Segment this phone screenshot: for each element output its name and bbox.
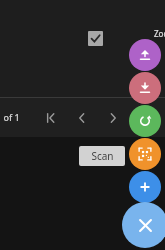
button[interactable]: First page xyxy=(38,105,64,131)
button[interactable]: Download xyxy=(129,72,161,104)
button[interactable]: Next page xyxy=(100,105,126,131)
button[interactable]: Upload xyxy=(129,39,161,71)
button[interactable]: Select all xyxy=(88,31,103,46)
button[interactable]: Refresh xyxy=(129,105,161,137)
button[interactable]: Close menu xyxy=(122,202,165,248)
button[interactable]: Add xyxy=(129,171,161,203)
button[interactable]: Scan xyxy=(79,146,125,166)
staticText: 1 of 1 xyxy=(0,111,20,123)
button[interactable]: Scan QR code xyxy=(129,138,161,170)
staticText: Zoom xyxy=(154,28,165,39)
button[interactable]: Previous page xyxy=(69,105,95,131)
staticText: Scan xyxy=(91,149,114,163)
